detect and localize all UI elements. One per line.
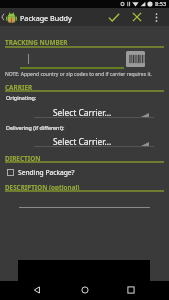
staticText: DIRECTION [5,154,41,163]
button[interactable]: Home [75,280,95,300]
staticText: 8:53 [155,0,167,8]
staticText: TRACKING NUMBER [5,38,68,47]
staticText: NOTE: Append country or zip codes to end… [5,71,152,78]
button[interactable] [19,195,150,208]
button[interactable]: Back [27,280,47,300]
button[interactable]: More options [147,8,165,26]
staticText: Sending Package? [18,168,75,177]
staticText: Delivering (if different): [6,124,65,131]
staticText: Package Buddy [20,13,72,23]
staticText: Select Carrier... [53,136,112,147]
button[interactable]: Recent apps [121,280,141,300]
staticText: Select Carrier... [53,107,112,118]
button[interactable]: Select Carrier... [34,104,154,122]
staticText: CARRIER [5,83,33,92]
button[interactable] [20,49,124,69]
button[interactable]: Select Carrier... [34,133,154,151]
button[interactable]: Navigate up [0,8,19,26]
button[interactable]: Cancel [127,8,147,26]
button[interactable]: Scan barcode [126,51,145,67]
staticText: DESCRIPTION (optional) [5,183,80,192]
staticText: Originating: [6,94,37,101]
button[interactable]: Sending Package? [5,165,79,179]
button[interactable]: Save [103,8,125,26]
